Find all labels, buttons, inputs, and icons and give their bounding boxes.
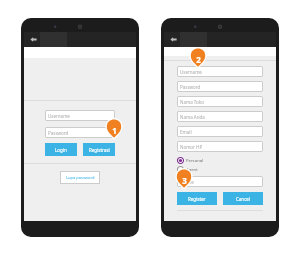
button[interactable]: Back <box>27 33 40 46</box>
staticText: Nama Anda <box>180 114 205 120</box>
staticText: Register <box>188 196 206 202</box>
staticText: Email <box>180 129 192 135</box>
button[interactable]: Username <box>177 66 263 77</box>
button[interactable]: Register <box>177 192 217 205</box>
button[interactable]: Upline <box>177 176 263 187</box>
button[interactable]: Email <box>177 126 263 137</box>
button[interactable]: Password <box>177 81 263 92</box>
staticText: Username <box>48 113 70 119</box>
button[interactable]: Agent <box>177 166 263 173</box>
button[interactable]: Nama Anda <box>177 111 263 122</box>
button[interactable]: Nama Toko <box>177 96 263 107</box>
staticText: Registrasi <box>89 147 110 153</box>
staticText: 1 <box>112 125 117 136</box>
staticText: Password <box>180 84 201 90</box>
button[interactable]: Login <box>45 143 77 156</box>
staticText: Lupa password <box>66 175 95 180</box>
staticText: Cancel <box>236 196 251 202</box>
button[interactable]: Password <box>45 127 115 138</box>
staticText: Upline <box>180 179 194 185</box>
button[interactable]: Registrasi <box>83 143 115 156</box>
staticText: Nomor HP <box>180 144 203 150</box>
button[interactable]: Nomor HP <box>177 141 263 152</box>
staticText: Nama Toko <box>180 99 204 105</box>
staticText: Password <box>48 130 69 136</box>
staticText: Agent <box>186 167 198 173</box>
button[interactable]: Personal <box>177 157 263 164</box>
staticText: 3 <box>182 175 187 186</box>
staticText: 2 <box>196 54 201 65</box>
button[interactable]: Cancel <box>223 192 263 205</box>
button[interactable]: Back <box>167 33 180 46</box>
button[interactable]: Username <box>45 110 115 121</box>
staticText: Personal <box>186 158 204 164</box>
button[interactable]: Lupa password <box>60 171 100 184</box>
staticText: Login <box>55 147 67 153</box>
staticText: Username <box>180 69 202 75</box>
